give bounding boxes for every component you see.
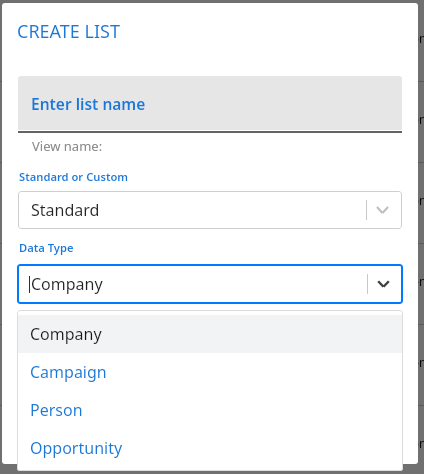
button[interactable]: Standard: [18, 191, 402, 229]
staticText: Organization: [353, 192, 424, 208]
staticText: CREATE LIST: [17, 19, 120, 44]
staticText: View name:: [32, 137, 103, 155]
button[interactable]: Company: [17, 315, 403, 353]
staticText: Data Type: [19, 240, 74, 255]
staticText: Organization: [353, 30, 424, 46]
other: Open dropdown: [376, 206, 389, 214]
staticText: Campaign: [30, 361, 107, 383]
staticText: Organization: [353, 435, 424, 451]
button[interactable]: Enter list name: [18, 76, 402, 130]
staticText: Organization: [353, 111, 424, 127]
staticText: Standard: [31, 199, 100, 221]
other: Open dropdown: [377, 280, 390, 288]
staticText: Organization: [353, 273, 424, 289]
button[interactable]: Opportunity: [17, 429, 403, 467]
staticText: Company: [30, 323, 102, 345]
staticText: Company: [31, 273, 103, 295]
button[interactable]: Person: [17, 391, 403, 429]
button[interactable]: Company: [17, 264, 403, 304]
staticText: Standard or Custom: [19, 169, 129, 184]
staticText: Person: [30, 399, 83, 421]
staticText: Opportunity: [30, 437, 123, 459]
button[interactable]: Campaign: [17, 353, 403, 391]
staticText: Enter list name: [31, 93, 146, 114]
staticText: Organization: [353, 354, 424, 370]
